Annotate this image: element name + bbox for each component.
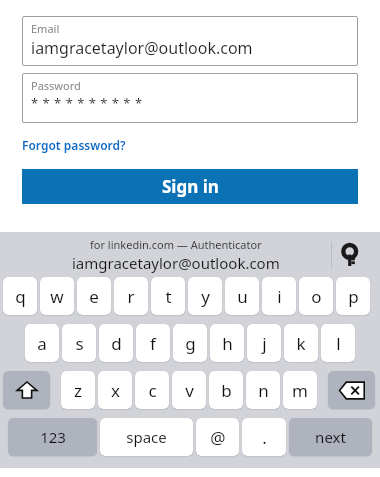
staticText: l bbox=[336, 332, 341, 355]
staticText: next bbox=[315, 427, 346, 447]
button[interactable]: i bbox=[262, 277, 296, 315]
button[interactable]: Sign in bbox=[22, 169, 358, 204]
button[interactable]: j bbox=[247, 324, 281, 362]
button[interactable]: w bbox=[40, 277, 74, 315]
staticText: for linkedin.com — Authenticator bbox=[90, 237, 262, 252]
staticText: k bbox=[296, 332, 306, 355]
button[interactable]: l bbox=[321, 324, 355, 362]
staticText: w bbox=[50, 285, 64, 308]
button[interactable]: Forgot password? bbox=[22, 135, 126, 155]
button[interactable]: f bbox=[136, 324, 170, 362]
button[interactable]: 123 bbox=[8, 418, 97, 456]
button[interactable]: Shift bbox=[3, 371, 50, 409]
button[interactable]: space bbox=[100, 418, 193, 456]
button[interactable]: g bbox=[173, 324, 207, 362]
staticText: f bbox=[150, 332, 156, 355]
staticText: Sign in bbox=[162, 175, 219, 198]
button[interactable]: o bbox=[299, 277, 333, 315]
button[interactable]: t bbox=[151, 277, 185, 315]
staticText: d bbox=[111, 332, 122, 355]
button[interactable]: p bbox=[336, 277, 370, 315]
staticText: i bbox=[277, 285, 282, 308]
staticText: g bbox=[185, 332, 196, 355]
staticText: . bbox=[262, 426, 267, 449]
staticText: r bbox=[127, 285, 135, 308]
staticText: p bbox=[348, 285, 359, 308]
staticText: e bbox=[89, 285, 99, 308]
button[interactable]: b bbox=[209, 371, 243, 409]
button[interactable]: Passwords bbox=[332, 235, 370, 275]
staticText: q bbox=[15, 285, 26, 308]
staticText: y bbox=[201, 285, 210, 308]
staticText: x bbox=[111, 379, 120, 402]
button[interactable]: v bbox=[172, 371, 206, 409]
button[interactable]: n bbox=[246, 371, 280, 409]
staticText: Email bbox=[31, 21, 60, 36]
button[interactable]: . bbox=[242, 418, 286, 456]
staticText: a bbox=[37, 332, 47, 355]
button[interactable]: y bbox=[188, 277, 222, 315]
button[interactable]: Email bbox=[22, 16, 358, 66]
button[interactable]: next bbox=[289, 418, 372, 456]
button[interactable]: q bbox=[3, 277, 37, 315]
staticText: z bbox=[74, 379, 82, 402]
button[interactable]: a bbox=[25, 324, 59, 362]
button[interactable]: Backspace bbox=[328, 371, 375, 409]
staticText: j bbox=[262, 332, 267, 355]
staticText: 123 bbox=[40, 427, 66, 447]
staticText: n bbox=[258, 379, 269, 402]
button[interactable]: for linkedin.com — Authenticator bbox=[72, 237, 280, 273]
button[interactable]: k bbox=[284, 324, 318, 362]
button[interactable]: h bbox=[210, 324, 244, 362]
button[interactable]: m bbox=[283, 371, 317, 409]
button[interactable]: r bbox=[114, 277, 148, 315]
staticText: b bbox=[221, 379, 232, 402]
staticText: c bbox=[148, 379, 157, 402]
staticText: u bbox=[237, 285, 248, 308]
staticText: * * * * * * * * * * bbox=[31, 94, 143, 112]
staticText: Password bbox=[31, 78, 81, 93]
staticText: Forgot password? bbox=[22, 137, 126, 153]
staticText: v bbox=[185, 379, 194, 402]
staticText: o bbox=[311, 285, 322, 308]
button[interactable]: c bbox=[135, 371, 169, 409]
staticText: iamgracetaylor@outlook.com bbox=[31, 37, 253, 59]
staticText: @ bbox=[210, 426, 226, 449]
staticText: iamgracetaylor@outlook.com bbox=[72, 253, 280, 273]
button[interactable]: z bbox=[61, 371, 95, 409]
staticText: m bbox=[292, 379, 308, 402]
button[interactable]: d bbox=[99, 324, 133, 362]
staticText: s bbox=[75, 332, 84, 355]
button[interactable]: e bbox=[77, 277, 111, 315]
staticText: h bbox=[222, 332, 233, 355]
button[interactable]: Password bbox=[22, 73, 358, 123]
button[interactable]: @ bbox=[196, 418, 239, 456]
button[interactable]: u bbox=[225, 277, 259, 315]
button[interactable]: s bbox=[62, 324, 96, 362]
button[interactable]: x bbox=[98, 371, 132, 409]
staticText: t bbox=[165, 285, 172, 308]
staticText: space bbox=[126, 427, 167, 447]
